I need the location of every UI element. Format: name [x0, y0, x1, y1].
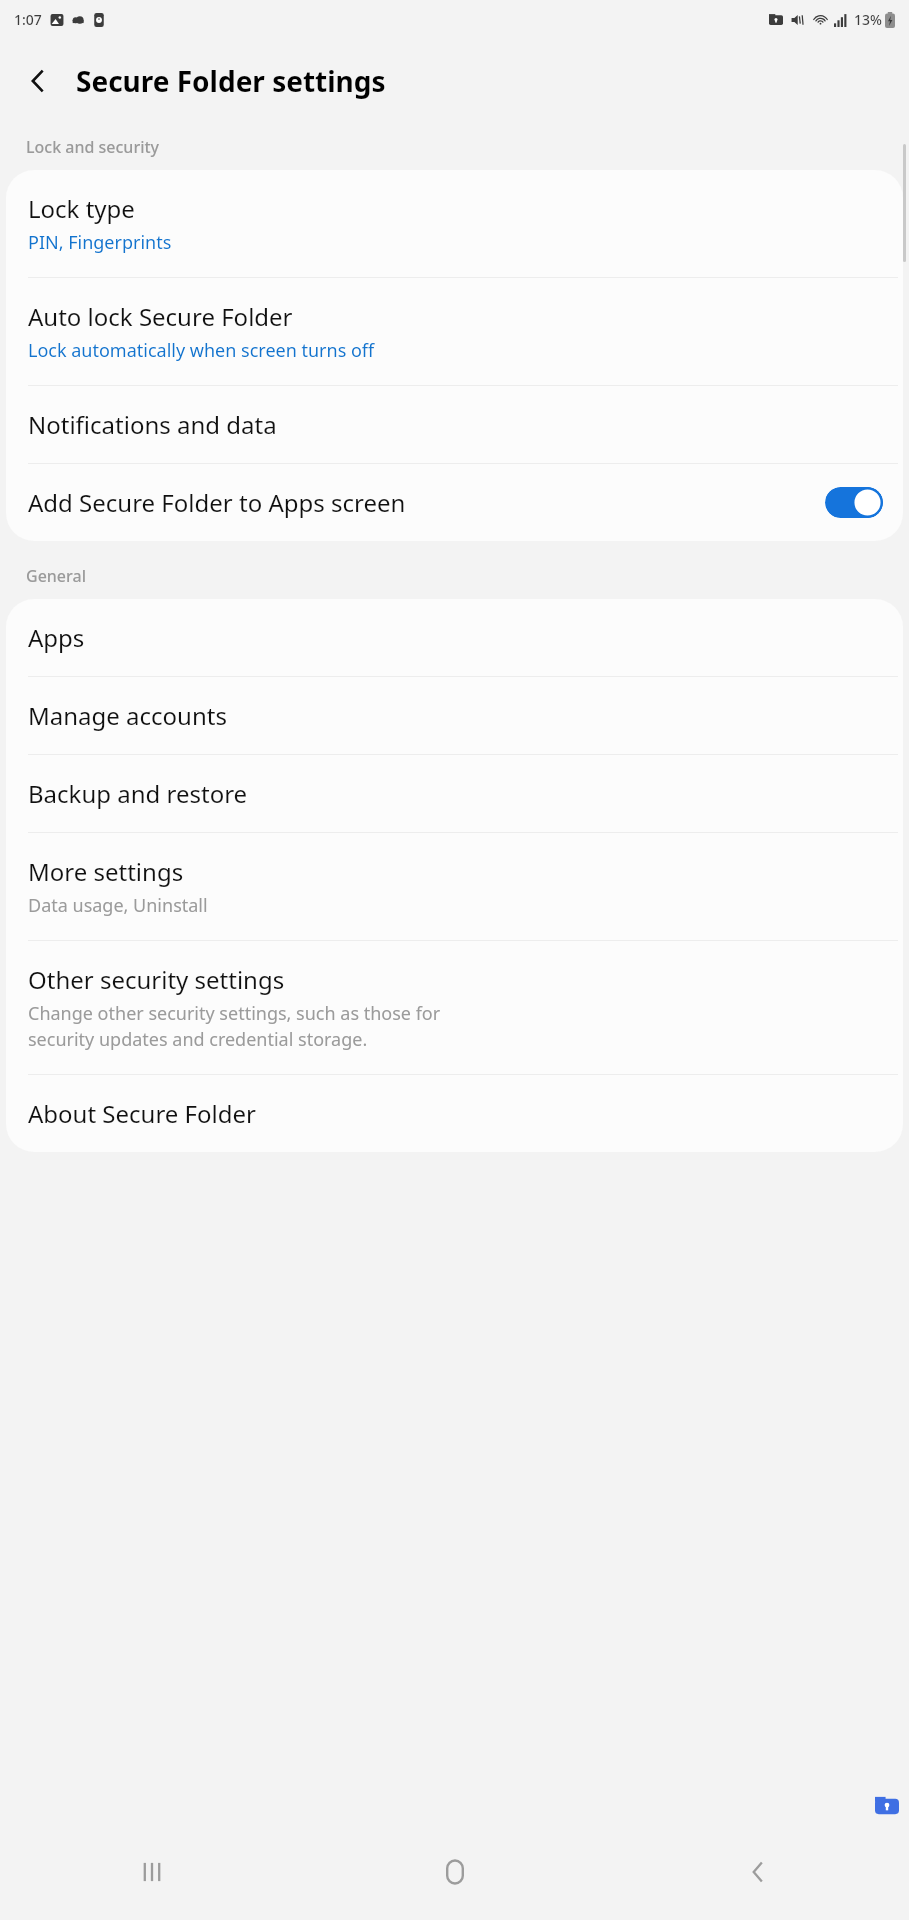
- button[interactable]: Add Secure Folder to Apps screen: [6, 464, 903, 541]
- staticText: Data usage, Uninstall: [28, 893, 208, 918]
- staticText: Notifications and data: [28, 408, 277, 441]
- button[interactable]: Manage accounts: [6, 677, 903, 754]
- button[interactable]: Apps: [6, 599, 903, 676]
- button[interactable]: Home: [390, 1824, 520, 1920]
- button[interactable]: Back: [693, 1824, 823, 1920]
- button[interactable]: Backup and restore: [6, 755, 903, 832]
- button[interactable]: Lock type: [6, 170, 903, 277]
- staticText: PIN, Fingerprints: [28, 230, 172, 255]
- button[interactable]: Other security settings: [6, 941, 903, 1074]
- staticText: Secure Folder settings: [76, 62, 386, 100]
- staticText: About Secure Folder: [28, 1097, 256, 1130]
- staticText: Lock type: [28, 192, 135, 225]
- staticText: Manage accounts: [28, 699, 227, 732]
- staticText: More settings: [28, 855, 184, 888]
- staticText: Add Secure Folder to Apps screen: [28, 486, 406, 519]
- button[interactable]: About Secure Folder: [6, 1075, 903, 1152]
- staticText: Backup and restore: [28, 777, 248, 810]
- button[interactable]: Auto lock Secure Folder: [6, 278, 903, 385]
- staticText: Apps: [28, 621, 85, 654]
- button[interactable]: Notifications and data: [6, 386, 903, 463]
- staticText: Auto lock Secure Folder: [28, 300, 293, 333]
- staticText: 13%: [854, 10, 882, 29]
- staticText: Lock and security: [26, 136, 160, 158]
- staticText: Other security settings: [28, 963, 285, 996]
- staticText: Change other security settings, such as …: [28, 1001, 441, 1052]
- staticText: 1:07: [14, 10, 42, 29]
- button[interactable]: More settings: [6, 833, 903, 940]
- button[interactable]: Back: [10, 53, 66, 109]
- button[interactable]: Recents: [87, 1824, 217, 1920]
- button[interactable]: Add Secure Folder to Apps screen: [825, 487, 883, 518]
- staticText: Lock automatically when screen turns off: [28, 338, 375, 363]
- staticText: General: [26, 565, 86, 587]
